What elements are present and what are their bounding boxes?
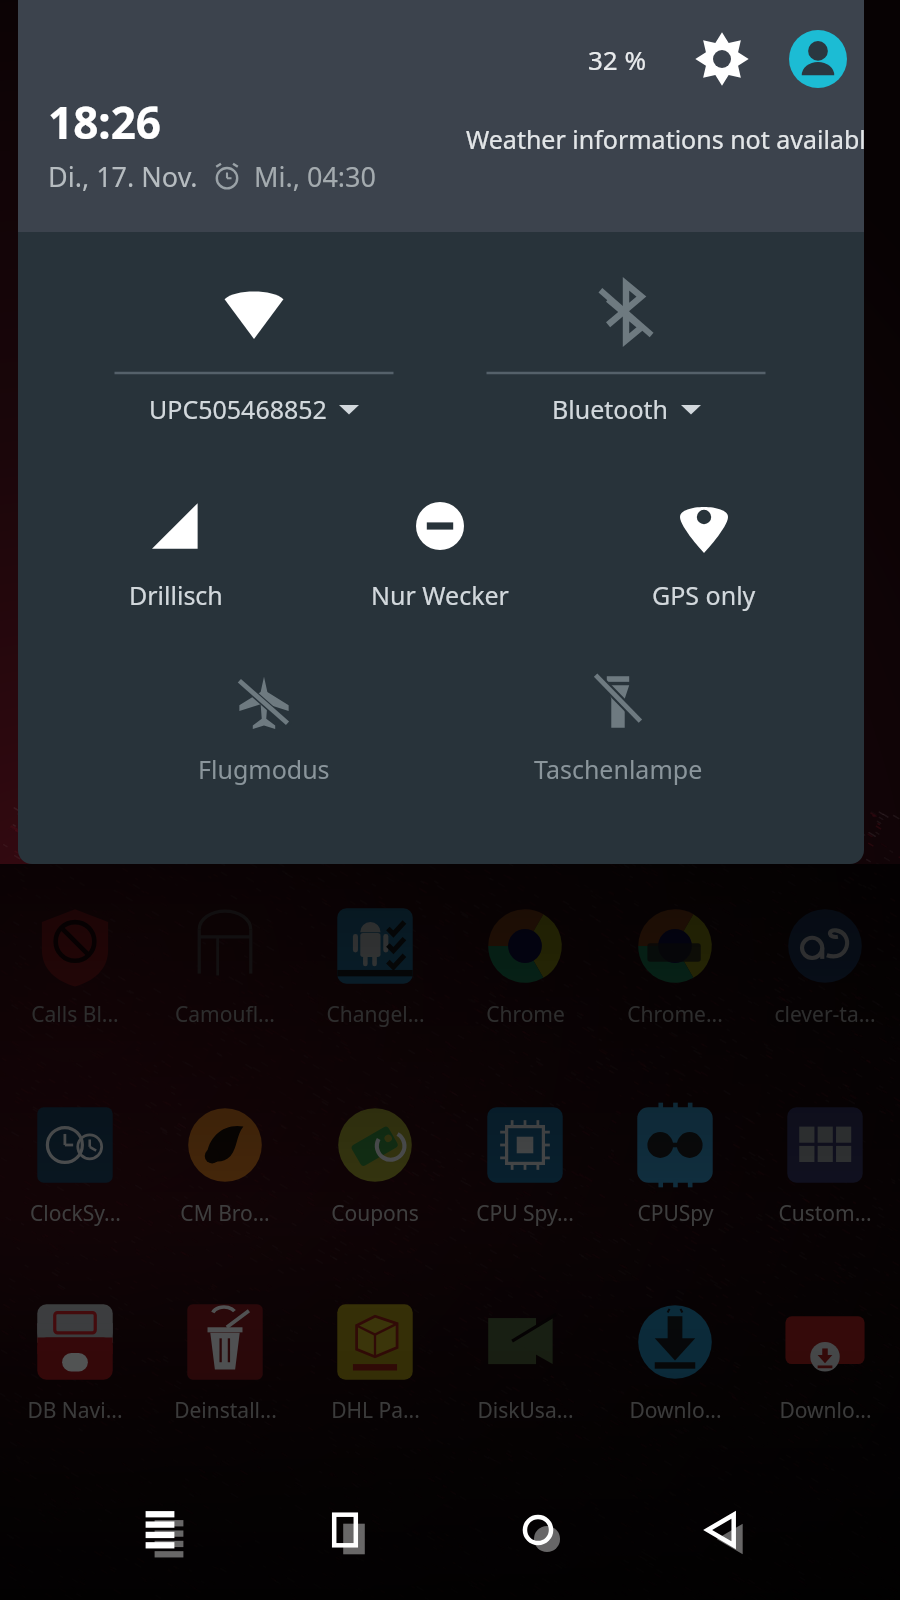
button[interactable]: DHL Pa... — [300, 1296, 450, 1446]
staticText: GPS only — [652, 578, 756, 612]
staticText: Taschenlampe — [534, 752, 703, 786]
staticText: Weather informations not available — [466, 122, 864, 156]
button[interactable]: Settings — [693, 30, 751, 88]
button[interactable]: Downlo... — [750, 1296, 900, 1446]
staticText: Camoufl... — [175, 1000, 275, 1029]
staticText: Downlo... — [629, 1396, 722, 1425]
button[interactable]: Changel... — [300, 900, 450, 1050]
button[interactable]: ClockSy... — [0, 1099, 150, 1249]
staticText: Flugmodus — [198, 752, 330, 786]
staticText: Chrome — [486, 1000, 565, 1029]
staticText: UPC505468852 — [149, 392, 327, 426]
button[interactable]: CM Bro... — [150, 1099, 300, 1249]
button[interactable]: Downlo... — [600, 1296, 750, 1446]
staticText: DB Navi... — [27, 1396, 123, 1425]
staticText: clever-ta... — [774, 1000, 876, 1029]
staticText: Bluetooth — [552, 392, 669, 426]
staticText: 18:26 — [48, 92, 162, 152]
button[interactable]: Flugmodus — [134, 648, 394, 808]
button[interactable]: GPS only — [584, 470, 824, 630]
staticText: Coupons — [331, 1199, 419, 1228]
staticText: Chrome... — [627, 1000, 723, 1029]
staticText: CPU Spy... — [476, 1199, 574, 1228]
staticText: DHL Pa... — [331, 1396, 420, 1425]
button[interactable]: Menu — [115, 1485, 205, 1575]
button[interactable]: Camoufl... — [150, 900, 300, 1050]
button[interactable]: Nur Wecker — [320, 470, 560, 630]
staticText: Nur Wecker — [371, 578, 509, 612]
button[interactable]: Home — [493, 1485, 583, 1575]
button[interactable]: UPC505468852 — [104, 252, 404, 442]
button[interactable]: Custom... — [750, 1099, 900, 1249]
staticText: Changel... — [326, 1000, 425, 1029]
button[interactable]: Calls Bl... — [0, 900, 150, 1050]
button[interactable]: Coupons — [300, 1099, 450, 1249]
button[interactable]: Recents — [300, 1485, 390, 1575]
button[interactable]: Bluetooth — [476, 252, 776, 442]
button[interactable]: Deinstall... — [150, 1296, 300, 1446]
button[interactable]: Chrome — [450, 900, 600, 1050]
staticText: 32 % — [588, 42, 647, 77]
staticText: ClockSy... — [30, 1199, 121, 1228]
button[interactable]: CPUSpy — [600, 1099, 750, 1249]
button[interactable]: CPU Spy... — [450, 1099, 600, 1249]
staticText: Custom... — [778, 1199, 872, 1228]
button[interactable]: Drillisch — [56, 470, 296, 630]
button[interactable]: DB Navi... — [0, 1296, 150, 1446]
button[interactable]: Taschenlampe — [488, 648, 748, 808]
staticText: CPUSpy — [637, 1199, 714, 1228]
button[interactable]: DiskUsa... — [450, 1296, 600, 1446]
staticText: Deinstall... — [174, 1396, 277, 1425]
button[interactable]: clever-ta... — [750, 900, 900, 1050]
staticText: Downlo... — [779, 1396, 872, 1425]
staticText: Drillisch — [129, 578, 223, 612]
staticText: Calls Bl... — [31, 1000, 119, 1029]
staticText: Di., 17. Nov. — [48, 158, 198, 195]
button[interactable]: Chrome... — [600, 900, 750, 1050]
staticText: CM Bro... — [180, 1199, 270, 1228]
staticText: DiskUsa... — [477, 1396, 574, 1425]
button[interactable]: Back — [677, 1485, 767, 1575]
staticText: Mi., 04:30 — [254, 158, 376, 195]
button[interactable]: User profile — [789, 30, 847, 88]
